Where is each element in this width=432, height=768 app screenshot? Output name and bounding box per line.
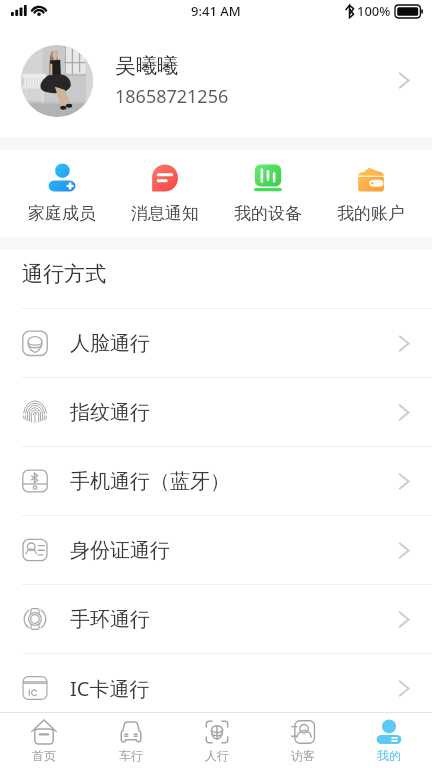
staticText: 手环通行 [70,607,393,632]
staticText: 人行 [205,748,229,763]
button[interactable]: 我的 [346,713,432,768]
staticText: IC卡通行 [70,675,393,702]
button[interactable]: 身份证通行 [0,516,432,584]
button[interactable]: 手机通行（蓝牙） [0,447,432,515]
staticText: 9:41 AM [191,2,241,20]
button[interactable]: 吴曦曦 [0,24,432,137]
staticText: 我的账户 [337,203,405,224]
staticText: 18658721256 [115,84,229,109]
button[interactable]: 人脸通行 [0,309,432,377]
staticText: 车行 [119,748,143,763]
button[interactable]: 消息通知 [113,150,216,237]
staticText: 指纹通行 [70,400,393,425]
staticText: 100% [357,2,391,20]
button[interactable]: 车行 [87,713,174,768]
button[interactable]: IC卡通行 [0,654,432,712]
staticText: 通行方式 [22,261,106,287]
button[interactable]: 我的账户 [319,150,422,237]
button[interactable]: 手环通行 [0,585,432,653]
staticText: 首页 [32,748,56,763]
button[interactable]: 指纹通行 [0,378,432,446]
staticText: 访客 [291,748,315,763]
staticText: 手机通行（蓝牙） [70,469,393,494]
staticText: 吴曦曦 [115,53,178,79]
button[interactable]: 人行 [174,713,260,768]
staticText: 家庭成员 [28,203,96,224]
button[interactable]: 访客 [260,713,346,768]
button[interactable]: 家庭成员 [10,150,113,237]
staticText: 我的 [377,748,401,763]
staticText: 消息通知 [131,203,199,224]
staticText: 我的设备 [234,203,302,224]
button[interactable]: 我的设备 [216,150,319,237]
staticText: 身份证通行 [70,538,393,563]
staticText: 人脸通行 [70,331,393,356]
button[interactable]: 首页 [0,713,87,768]
